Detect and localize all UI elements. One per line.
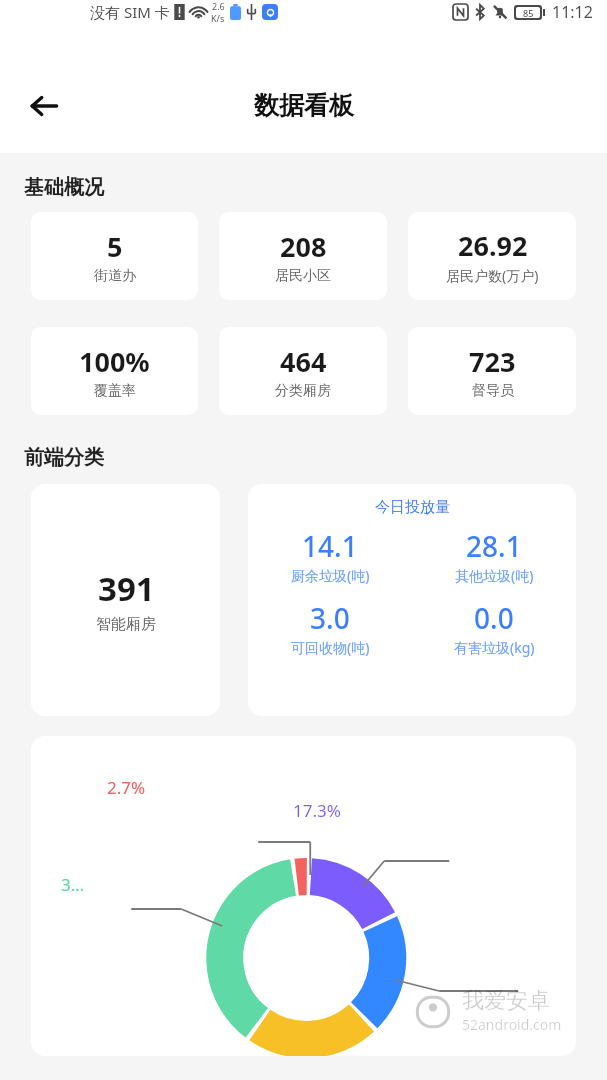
- staticText: 3…: [61, 873, 85, 896]
- button[interactable]: 391: [31, 484, 220, 716]
- staticText: 居民小区: [275, 267, 331, 285]
- staticText: 前端分类: [24, 445, 104, 470]
- staticText: 街道办: [94, 267, 136, 285]
- button[interactable]: 723: [408, 327, 576, 415]
- staticText: 52android.com: [462, 1015, 562, 1034]
- button[interactable]: 100%: [31, 327, 198, 415]
- staticText: 可回收物(吨): [291, 638, 370, 657]
- staticText: 数据看板: [254, 90, 354, 121]
- staticText: 其他垃圾(吨): [455, 566, 534, 585]
- staticText: 我爱安卓: [462, 987, 550, 1015]
- button[interactable]: 26.92: [408, 212, 576, 300]
- staticText: 391: [98, 566, 155, 611]
- staticText: 督导员: [472, 382, 514, 400]
- staticText: 5: [107, 228, 123, 265]
- staticText: 3.0: [310, 599, 350, 637]
- staticText: 208: [280, 228, 327, 265]
- button[interactable]: 返回: [18, 80, 70, 132]
- staticText: 今日投放量: [375, 498, 450, 517]
- button[interactable]: 分类占比图表: [31, 736, 576, 1056]
- staticText: 17.3%: [293, 799, 341, 822]
- staticText: 居民户数(万户): [446, 266, 539, 285]
- staticText: 28.1: [466, 527, 522, 565]
- staticText: K/s: [211, 12, 225, 24]
- staticText: 智能厢房: [96, 615, 156, 634]
- staticText: 2.6: [212, 0, 225, 12]
- staticText: 基础概况: [24, 175, 104, 200]
- staticText: 100%: [79, 343, 150, 380]
- staticText: 分类厢房: [275, 382, 331, 400]
- staticText: 723: [469, 343, 516, 380]
- button[interactable]: 464: [219, 327, 387, 415]
- staticText: 2.7%: [107, 776, 146, 799]
- staticText: 11:12: [552, 1, 593, 23]
- staticText: 0.0: [474, 599, 514, 637]
- button[interactable]: 今日投放量: [248, 484, 576, 716]
- button[interactable]: 208: [219, 212, 387, 300]
- staticText: 没有 SIM 卡: [90, 2, 170, 22]
- staticText: 14.1: [302, 527, 358, 565]
- staticText: 464: [280, 343, 327, 380]
- staticText: 厨余垃圾(吨): [291, 566, 370, 585]
- staticText: 26.92: [458, 227, 528, 264]
- staticText: 覆盖率: [94, 382, 136, 400]
- staticText: 有害垃圾(kg): [454, 638, 535, 657]
- button[interactable]: 5: [31, 212, 198, 300]
- staticText: 85: [523, 7, 534, 18]
